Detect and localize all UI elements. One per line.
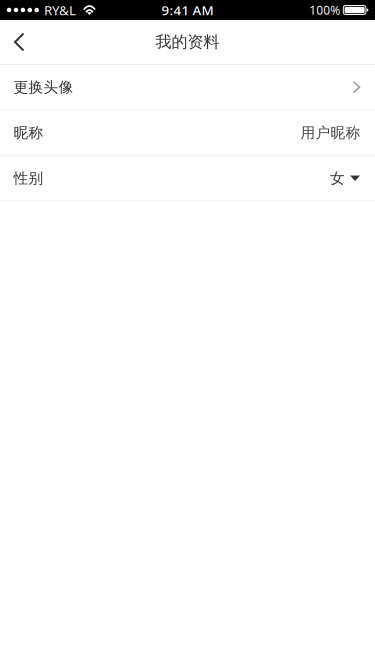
button[interactable]: 昵称: [0, 110, 375, 155]
staticText: 9:41 AM: [161, 1, 213, 19]
staticText: 性别: [13, 169, 43, 187]
staticText: 更换头像: [13, 78, 73, 96]
button[interactable]: 更换头像: [0, 65, 375, 109]
staticText: 昵称: [13, 124, 43, 142]
staticText: 用户昵称: [300, 124, 360, 142]
staticText: 100%: [309, 2, 340, 18]
staticText: RY&L: [44, 1, 76, 19]
button[interactable]: 性别: [0, 156, 375, 200]
staticText: 我的资料: [155, 32, 219, 52]
staticText: 女: [330, 169, 345, 187]
button[interactable]: Back: [0, 20, 45, 64]
